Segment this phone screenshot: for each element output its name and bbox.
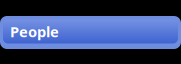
- staticText: People: [10, 22, 59, 41]
- button[interactable]: People: [0, 15, 181, 49]
